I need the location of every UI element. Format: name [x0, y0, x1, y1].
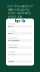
staticText: jordan@mail.com: [8, 39, 19, 41]
staticText: Rivera: [8, 32, 13, 34]
button[interactable]: PHONE NUMBER: [7, 44, 33, 51]
button[interactable]: LAST NAME: [7, 30, 33, 37]
button[interactable]: CITY: [7, 58, 33, 65]
staticText: PASSWORD: [7, 51, 15, 53]
button[interactable]: FIRST NAME: [7, 23, 33, 30]
button[interactable]: PASSWORD: [7, 51, 33, 58]
staticText: ••••••••: [8, 53, 16, 55]
staticText: EMAIL ADDRESS: [7, 37, 18, 39]
staticText: Sign Up: [14, 19, 25, 23]
staticText: Jordan: [8, 25, 13, 27]
button[interactable]: EMAIL ADDRESS: [7, 37, 33, 44]
staticText: CITY: [7, 58, 10, 60]
staticText: PHONE NUMBER: [7, 44, 18, 46]
staticText: LAST NAME: [7, 30, 15, 32]
staticText: Join thousands of makers shipping better…: [7, 4, 32, 19]
staticText: +1 555 0134: [8, 46, 17, 48]
staticText: Portland: [8, 60, 14, 62]
staticText: FIRST NAME: [7, 23, 15, 25]
